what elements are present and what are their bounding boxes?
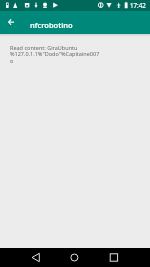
button[interactable]: Back (16, 248, 56, 267)
button[interactable]: Recent apps (94, 248, 134, 267)
staticText: Read content: GiraUbuntu %127.0.1.1%"Dod… (10, 44, 100, 65)
staticText: nfcrobotino (30, 20, 73, 30)
button[interactable]: Home (54, 248, 94, 267)
staticText: 17:42 (130, 1, 146, 9)
button[interactable]: Navigate up (0, 11, 22, 34)
